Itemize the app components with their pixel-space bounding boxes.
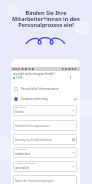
button[interactable]: Beendigung der Arbeitnehmer bbox=[13, 134, 77, 145]
button[interactable]: Versicherte bbox=[13, 147, 77, 158]
staticText: Geschlecht bbox=[15, 106, 27, 109]
button[interactable]: Sozialversicherung bbox=[11, 94, 80, 104]
staticText: Beendigung der Arbeitnehmer bbox=[15, 138, 53, 142]
staticText: Art der Versicherung bbox=[15, 162, 37, 165]
staticText: arbeitslose bbox=[15, 152, 31, 156]
button[interactable]: Sozialversicherungsnummer bbox=[13, 120, 77, 131]
staticText: Name des Versicherungstragers bbox=[15, 179, 55, 183]
staticText: Sozialversicherungsnummer bbox=[15, 124, 50, 128]
staticText: Divers bbox=[15, 110, 24, 114]
staticText: 100% bbox=[16, 76, 23, 80]
button[interactable]: Art der Versicherung bbox=[13, 161, 77, 172]
staticText: Sozialversicherung bbox=[21, 97, 48, 101]
staticText: gesetzlich bbox=[15, 166, 30, 170]
staticText: Persönliche Informationen bbox=[21, 87, 59, 91]
staticText: nuvigkt technologies GmbH bbox=[13, 72, 55, 76]
button[interactable]: Name des Versicherungstragers bbox=[13, 175, 77, 184]
button[interactable]: Geschlecht bbox=[13, 105, 77, 116]
staticText: Binden Sie Ihre Mitarbeiter*innen in den… bbox=[0, 9, 92, 29]
button[interactable]: Persönliche Informationen bbox=[11, 84, 80, 94]
staticText: Versicherte bbox=[15, 148, 27, 151]
